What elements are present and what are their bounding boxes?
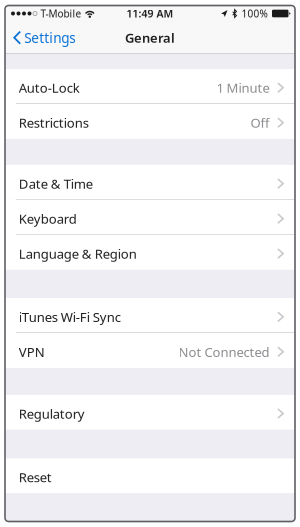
staticText: Date & Time <box>19 175 93 193</box>
staticText: Regulatory <box>19 405 85 422</box>
staticText: Reset <box>19 468 52 486</box>
staticText: Language & Region <box>19 245 137 263</box>
staticText: Off <box>250 114 269 132</box>
staticText: VPN <box>19 343 45 361</box>
staticText: 11:49 AM <box>126 6 173 21</box>
button[interactable]: Auto-Lock <box>5 69 295 104</box>
button[interactable]: Regulatory <box>5 395 295 430</box>
button[interactable]: Restrictions <box>5 104 295 139</box>
staticText: Settings <box>24 28 76 47</box>
button[interactable]: Date & Time <box>5 165 295 200</box>
staticText: T-Mobile <box>40 7 81 20</box>
button[interactable]: Keyboard <box>5 200 295 235</box>
button[interactable]: VPN <box>5 333 295 368</box>
button[interactable]: Settings <box>5 21 84 54</box>
staticText: 100% <box>241 7 267 20</box>
staticText: Keyboard <box>19 210 77 228</box>
staticText: Not Connected <box>178 343 269 361</box>
staticText: iTunes Wi-Fi Sync <box>19 308 121 326</box>
button[interactable]: Reset <box>5 458 295 493</box>
button[interactable]: iTunes Wi-Fi Sync <box>5 298 295 333</box>
staticText: General <box>125 29 175 46</box>
staticText: Restrictions <box>19 114 89 132</box>
button[interactable]: Language & Region <box>5 235 295 270</box>
staticText: 1 Minute <box>216 79 269 97</box>
staticText: Auto-Lock <box>19 79 80 97</box>
